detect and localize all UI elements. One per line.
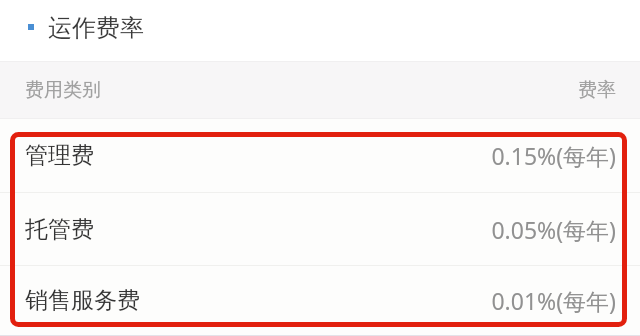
staticText: 管理费 — [25, 141, 94, 170]
staticText: 运作费率 — [48, 13, 144, 43]
staticText: 0.05%(每年) — [491, 214, 616, 245]
staticText: 费率 — [578, 78, 616, 102]
staticText: 托管费 — [25, 215, 94, 244]
staticText: 0.15%(每年) — [491, 140, 616, 171]
staticText: 费用类别 — [25, 78, 101, 102]
button[interactable]: Section marker — [0, 0, 640, 61]
button[interactable]: 托管费 — [0, 193, 640, 265]
button[interactable]: 管理费 — [0, 119, 640, 192]
button[interactable]: 销售服务费 — [0, 266, 640, 335]
staticText: 0.01%(每年) — [491, 285, 616, 316]
staticText: 销售服务费 — [25, 286, 140, 315]
